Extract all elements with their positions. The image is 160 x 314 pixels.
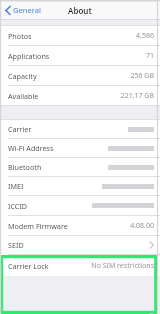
staticText: ICCID [8, 201, 28, 211]
staticText: Carrier [8, 124, 32, 134]
staticText: Modem Firmware [8, 221, 68, 231]
staticText: Wi-Fi Address [8, 143, 54, 153]
staticText: IMEI [8, 181, 24, 191]
staticText: Available [8, 91, 39, 101]
button[interactable]: General [4, 3, 42, 17]
staticText: Capacity [8, 71, 37, 81]
button[interactable]: IMEI [0, 177, 160, 196]
button[interactable]: ICCID [0, 196, 160, 216]
staticText: Bluetooth [8, 162, 42, 172]
staticText: SEID [8, 240, 24, 250]
button[interactable]: Carrier [0, 120, 160, 139]
button[interactable]: Carrier Lock [0, 255, 160, 276]
button[interactable]: Capacity [0, 66, 160, 86]
button[interactable]: Modem Firmware [0, 216, 160, 236]
staticText: 71 [145, 51, 154, 61]
staticText: Photos [8, 31, 32, 41]
button[interactable]: Wi-Fi Address [0, 139, 160, 158]
button[interactable]: Applications [0, 46, 160, 66]
staticText: 256 GB [130, 71, 154, 81]
staticText: About [68, 5, 92, 16]
button[interactable]: Available [0, 86, 160, 105]
button[interactable]: Bluetooth [0, 158, 160, 177]
staticText: 4.08.00 [130, 221, 154, 231]
staticText: Applications [8, 51, 50, 61]
staticText: 221.17 GB [120, 91, 154, 101]
staticText: 4,586 [136, 31, 154, 41]
button[interactable]: SEID [0, 236, 160, 255]
staticText: No SIM restrictions [91, 261, 154, 271]
button[interactable]: Photos [0, 26, 160, 46]
staticText: Carrier Lock [8, 261, 49, 271]
staticText: General [13, 5, 41, 15]
